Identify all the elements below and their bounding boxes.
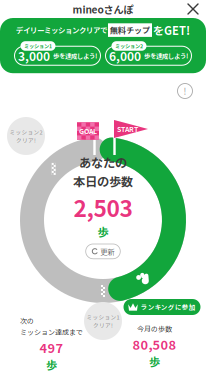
- staticText: 歩: [149, 353, 160, 370]
- staticText: 3,000: [18, 47, 50, 64]
- staticText: 歩を達成しよう!: [144, 51, 188, 60]
- staticText: ミッション2: [9, 128, 42, 136]
- staticText: デイリーミッションクリアで: [16, 25, 107, 35]
- staticText: 歩を達成しよう!: [53, 51, 97, 60]
- staticText: クリア!: [93, 321, 113, 329]
- staticText: ミッション達成まで: [20, 327, 83, 337]
- staticText: ミッション2: [115, 42, 143, 50]
- staticText: 今月の歩数: [137, 324, 172, 334]
- staticText: 2,503: [73, 191, 132, 223]
- staticText: あなたの: [79, 153, 127, 171]
- staticText: mineoさんぽ: [72, 2, 133, 16]
- staticText: 更新: [100, 246, 114, 257]
- staticText: ミッション1: [86, 313, 119, 321]
- staticText: 80,508: [132, 335, 176, 353]
- staticText: 歩: [46, 357, 57, 373]
- staticText: クリア!: [16, 136, 36, 144]
- staticText: START: [117, 124, 138, 134]
- button[interactable]: 説明: [177, 83, 192, 98]
- staticText: 6,000: [109, 47, 141, 64]
- staticText: 497: [39, 338, 63, 357]
- staticText: をGET!: [153, 22, 190, 38]
- staticText: 無料チップ: [110, 24, 150, 36]
- staticText: !: [183, 85, 186, 97]
- staticText: 歩: [97, 224, 108, 240]
- button[interactable]: 更新: [86, 244, 120, 259]
- staticText: ミッション1: [24, 42, 52, 50]
- staticText: 本日の歩数: [73, 172, 133, 190]
- staticText: GOAL: [79, 126, 97, 136]
- button[interactable]: 閉じる: [180, 0, 206, 18]
- staticText: ランキングに参加: [141, 302, 196, 312]
- staticText: 次の: [20, 316, 34, 326]
- button[interactable]: ランキングに参加: [123, 299, 200, 315]
